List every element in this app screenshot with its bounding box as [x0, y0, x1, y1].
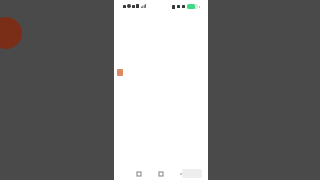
- button[interactable]: Navigation: [158, 171, 163, 176]
- button[interactable]: [117, 69, 123, 76]
- button[interactable]: More: [178, 171, 183, 176]
- button[interactable]: Navigation: [136, 171, 141, 176]
